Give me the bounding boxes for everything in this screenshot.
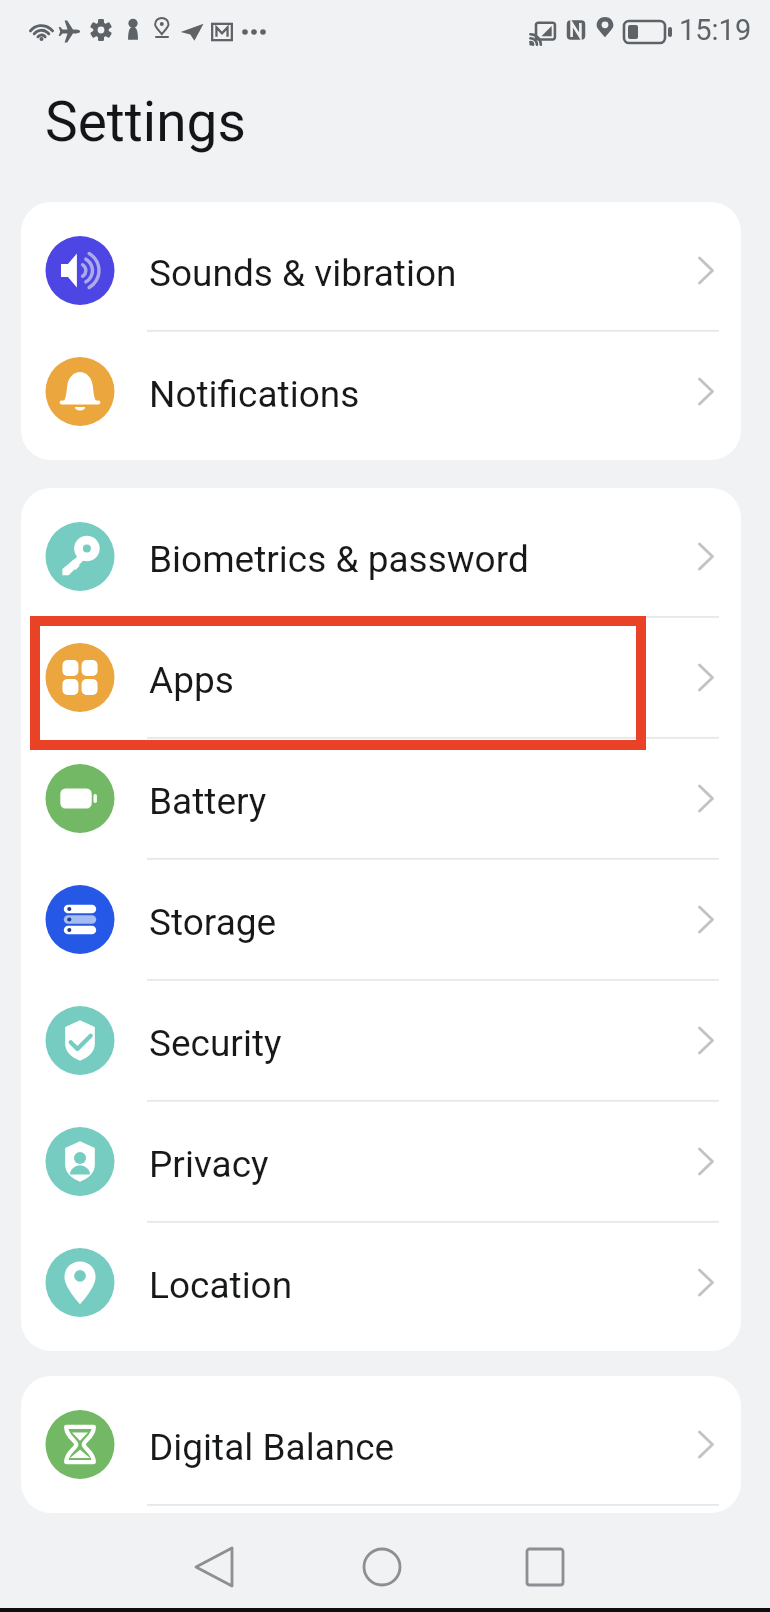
- button[interactable]: Location: [21, 1222, 741, 1343]
- button[interactable]: Battery: [21, 738, 741, 859]
- button[interactable]: Home: [337, 1520, 427, 1610]
- staticText: Settings: [45, 90, 246, 154]
- staticText: Privacy: [149, 1143, 269, 1186]
- staticText: Apps: [149, 659, 234, 702]
- staticText: Storage: [149, 901, 277, 944]
- staticText: Biometrics & password: [149, 538, 529, 581]
- staticText: Location: [149, 1264, 293, 1307]
- staticText: Digital Balance: [149, 1426, 395, 1469]
- staticText: Notifications: [149, 373, 360, 416]
- button[interactable]: Recents: [500, 1520, 590, 1610]
- button[interactable]: Sounds & vibration: [21, 210, 741, 331]
- button[interactable]: Back: [169, 1520, 259, 1610]
- button[interactable]: Digital Balance: [21, 1384, 741, 1505]
- button[interactable]: Storage: [21, 859, 741, 980]
- staticText: Sounds & vibration: [149, 252, 457, 295]
- staticText: 15:19: [679, 13, 752, 47]
- staticText: Battery: [149, 780, 267, 823]
- button[interactable]: Apps: [21, 617, 741, 738]
- button[interactable]: Privacy: [21, 1101, 741, 1222]
- button[interactable]: Biometrics & password: [21, 496, 741, 617]
- button[interactable]: Notifications: [21, 331, 741, 452]
- staticText: Security: [149, 1022, 282, 1065]
- button[interactable]: Security: [21, 980, 741, 1101]
